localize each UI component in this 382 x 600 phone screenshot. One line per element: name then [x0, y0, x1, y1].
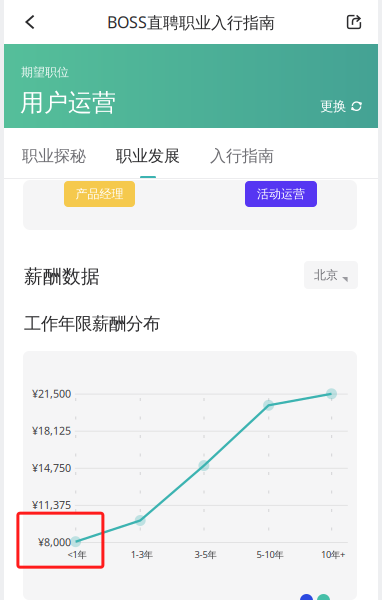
button[interactable]: 活动运营	[245, 181, 317, 207]
staticText: 工作年限薪酬分布	[24, 313, 160, 334]
staticText: 5-10年	[257, 548, 284, 561]
staticText: 活动运营	[257, 187, 305, 201]
staticText: 10年+	[321, 548, 345, 561]
button[interactable]: 产品经理	[64, 181, 135, 207]
staticText: ¥8,000	[38, 535, 71, 549]
staticText: 职业探秘	[22, 146, 86, 166]
button[interactable]: Back	[10, 0, 50, 44]
button[interactable]: 北京	[304, 261, 358, 289]
button[interactable]: 职业发展	[114, 128, 182, 178]
button[interactable]: 职业探秘	[20, 128, 88, 178]
staticText: ¥21,500	[32, 386, 71, 401]
button[interactable]: 入行指南	[208, 128, 276, 178]
staticText: 薪酬数据	[24, 265, 100, 288]
staticText: 入行指南	[210, 146, 274, 166]
button[interactable]: 更换	[314, 92, 368, 120]
staticText: 职业发展	[116, 146, 180, 166]
staticText: ¥11,375	[32, 498, 71, 512]
staticText: 产品经理	[75, 187, 123, 201]
button[interactable]: Share	[334, 0, 374, 44]
staticText: <1年	[68, 548, 87, 561]
staticText: BOSS直聘职业入行指南	[107, 11, 275, 33]
staticText: 用户运营	[20, 88, 116, 117]
staticText: 更换	[320, 98, 346, 114]
staticText: 期望职位	[21, 65, 69, 80]
staticText: 北京	[314, 268, 338, 282]
staticText: ¥18,125	[32, 424, 71, 438]
staticText: ¥14,750	[32, 461, 71, 475]
staticText: 1-3年	[131, 548, 153, 561]
staticText: 3-5年	[194, 548, 216, 561]
